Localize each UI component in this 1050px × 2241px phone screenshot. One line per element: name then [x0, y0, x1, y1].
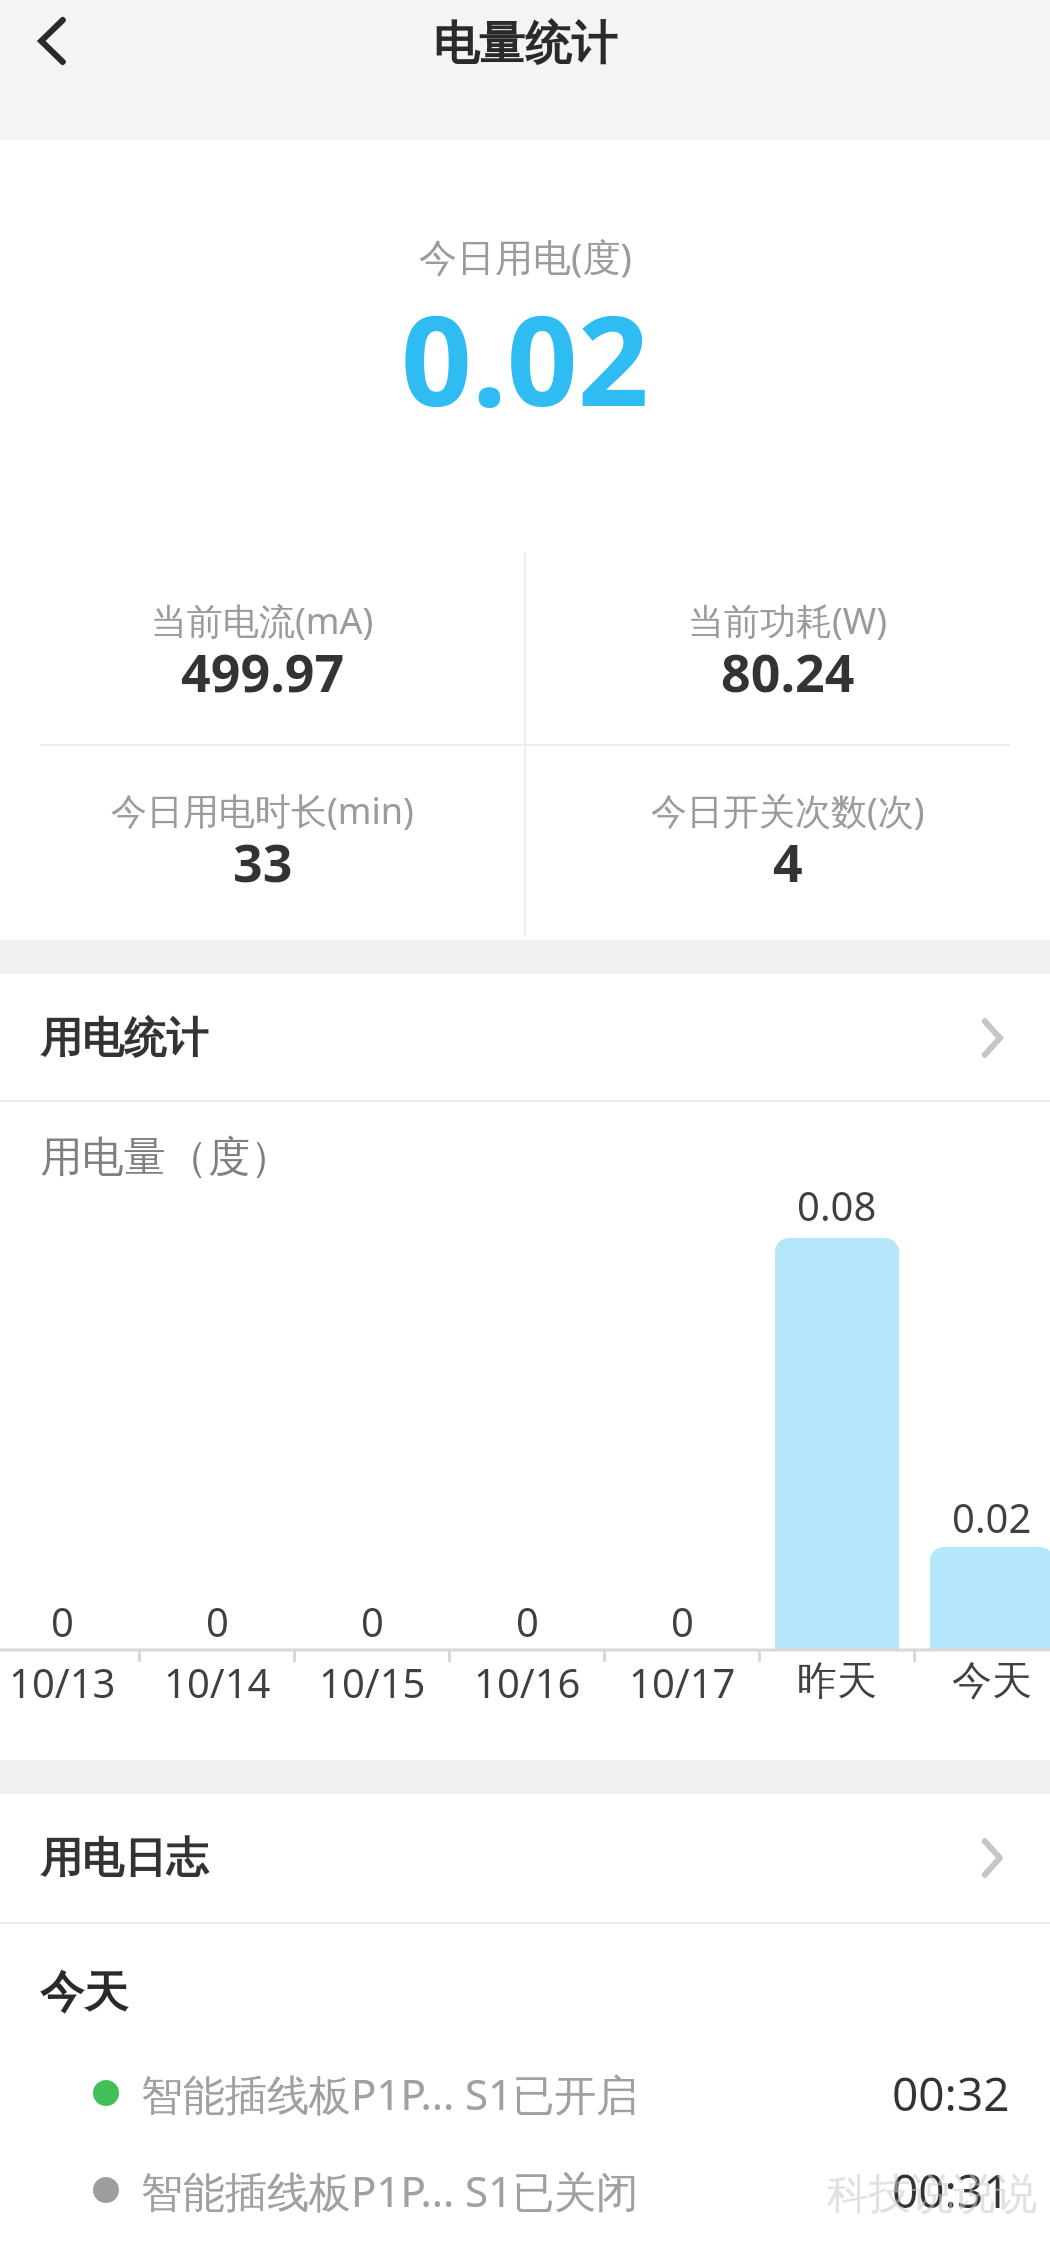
staticText: 昨天	[797, 1655, 877, 1705]
staticText: 0.02	[952, 1490, 1032, 1538]
staticText: 科技说说说	[827, 2168, 1037, 2221]
staticText: 80.24	[721, 636, 855, 696]
staticText: 当前功耗(W)	[688, 596, 888, 640]
button[interactable]: 用电日志	[0, 1794, 1050, 1922]
button[interactable]: 用电统计	[0, 974, 1050, 1102]
staticText: 今日开关次数(次)	[651, 786, 925, 830]
staticText: 今天	[952, 1655, 1032, 1705]
staticText: 33	[233, 826, 293, 886]
staticText: 0	[516, 1594, 539, 1642]
staticText: 10/17	[629, 1655, 736, 1705]
button[interactable]: 智能插线板P1P... S1已开启	[0, 2048, 1050, 2138]
staticText: 4	[773, 826, 803, 886]
button[interactable]	[20, 0, 84, 82]
button[interactable]: 智能插线板P1P... S1已关闭	[0, 2145, 1050, 2235]
staticText: 0.02	[401, 273, 649, 411]
staticText: 智能插线板P1P... S1已开启	[141, 2065, 639, 2122]
staticText: 今日用电(度)	[419, 230, 632, 282]
staticText: 10/16	[474, 1655, 581, 1705]
staticText: 0	[361, 1594, 384, 1642]
staticText: 今天	[40, 1965, 128, 2020]
staticText: 10/14	[164, 1655, 271, 1705]
staticText: 用电日志	[40, 1832, 208, 1885]
staticText: 用电统计	[40, 1012, 208, 1065]
staticText: 智能插线板P1P... S1已关闭	[141, 2162, 639, 2219]
staticText: 0	[51, 1594, 74, 1642]
staticText: 电量统计	[433, 15, 617, 73]
staticText: 10/13	[9, 1655, 116, 1705]
staticText: 用电量（度）	[40, 1131, 292, 1184]
staticText: 499.97	[181, 636, 345, 696]
staticText: 00:31	[892, 2159, 1010, 2222]
staticText: 0.08	[797, 1178, 877, 1226]
staticText: 今日用电时长(min)	[111, 786, 414, 830]
staticText: 0	[206, 1594, 229, 1642]
staticText: 0	[671, 1594, 694, 1642]
staticText: 10/15	[319, 1655, 426, 1705]
staticText: 00:32	[892, 2062, 1010, 2125]
staticText: 当前电流(mA)	[151, 596, 374, 640]
